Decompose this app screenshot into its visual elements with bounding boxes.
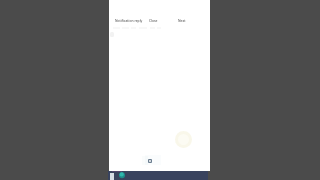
staticText: Notification reply [115,18,143,22]
button[interactable]: Open item [148,159,152,163]
button[interactable]: Next [178,18,186,22]
button[interactable]: App [118,172,126,178]
button[interactable]: Close [149,18,158,22]
button[interactable]: Notification reply [115,18,143,22]
staticText: Close [149,18,158,22]
staticText: Next [178,18,186,22]
